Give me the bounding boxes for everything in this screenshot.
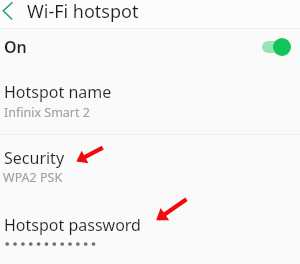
button[interactable]: Hotspot name xyxy=(0,71,300,131)
staticText: Hotspot name xyxy=(4,81,112,103)
button[interactable]: Hotspot password xyxy=(0,204,300,262)
button[interactable]: Navigate back xyxy=(0,0,23,24)
staticText: On xyxy=(4,36,27,58)
staticText: WPA2 PSK xyxy=(3,169,63,186)
staticText: Hotspot password xyxy=(4,214,141,236)
staticText: Security xyxy=(4,147,65,169)
button[interactable]: On xyxy=(0,28,300,66)
staticText: Wi-Fi hotspot xyxy=(27,0,139,24)
button[interactable]: Security xyxy=(0,137,300,197)
staticText: Infinix Smart 2 xyxy=(4,104,90,121)
